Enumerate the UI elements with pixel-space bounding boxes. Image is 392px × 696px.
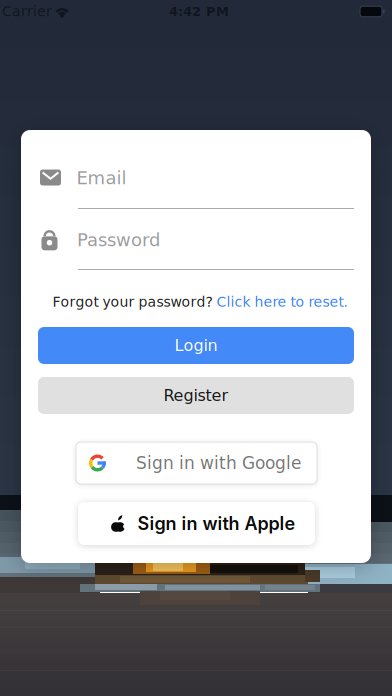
staticText: Sign in with Apple: [137, 513, 295, 534]
staticText: Login: [174, 336, 217, 355]
staticText: 4:42 PM: [169, 4, 229, 19]
button[interactable]: Sign in with Google: [76, 442, 317, 484]
staticText: Password: [77, 229, 160, 250]
button[interactable]: Login: [38, 327, 354, 364]
button[interactable]: Email: [38, 161, 354, 209]
staticText: Register: [163, 386, 228, 405]
staticText: Sign in with Google: [136, 453, 301, 473]
button[interactable]: Sign in with Apple: [78, 502, 315, 545]
button[interactable]: Forgot your password?: [52, 294, 347, 310]
staticText: Forgot your password?: [52, 294, 216, 310]
button[interactable]: Password: [38, 222, 354, 270]
button[interactable]: Register: [38, 377, 354, 414]
staticText: Email: [76, 167, 126, 188]
staticText: Click here to reset.: [216, 294, 347, 310]
staticText: Carrier: [2, 3, 52, 20]
